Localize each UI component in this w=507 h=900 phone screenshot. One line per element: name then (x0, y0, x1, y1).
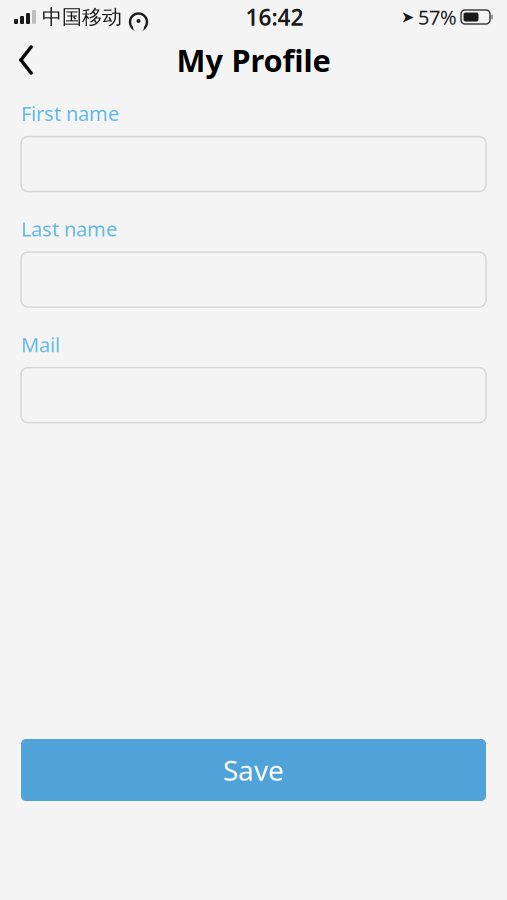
button[interactable]: First name (21, 137, 486, 192)
staticText: Mail (21, 331, 60, 358)
staticText: 16:42 (245, 2, 303, 32)
staticText: My Profile (176, 40, 330, 80)
staticText: Save (223, 751, 284, 789)
staticText: 57% (418, 4, 457, 30)
staticText: 中国移动 (42, 5, 122, 29)
staticText: ➤ (401, 8, 414, 26)
button[interactable]: Save (21, 739, 486, 801)
button[interactable]: Back (4, 38, 48, 82)
button[interactable]: Last name (21, 252, 486, 307)
button[interactable]: Mail (21, 368, 486, 423)
staticText: Last name (21, 216, 117, 242)
staticText: First name (21, 100, 119, 127)
